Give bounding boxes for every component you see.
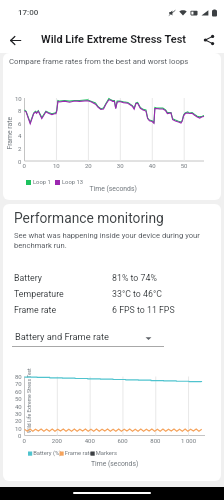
staticText: Wild Life Extreme Stress Test	[41, 33, 187, 46]
staticText: 6 FPS to 11 FPS	[112, 305, 175, 315]
staticText: Performance monitoring	[14, 210, 164, 226]
staticText: 33°C to 46°C	[112, 289, 162, 299]
staticText: Compare frame rates from the best and wo…	[9, 57, 189, 66]
staticText: Frame rate	[14, 305, 57, 315]
button[interactable]: Back	[4, 29, 26, 51]
staticText: Battery and Frame rate	[15, 331, 109, 342]
button[interactable]: Temperature	[3, 289, 221, 305]
button[interactable]: Battery	[3, 273, 221, 289]
staticText: 17:00	[18, 8, 39, 17]
button[interactable]: Battery and Frame rate	[12, 331, 164, 353]
staticText: 81% to 74%	[112, 273, 157, 283]
button[interactable]: Frame rate	[3, 305, 221, 321]
staticText: Battery	[14, 273, 42, 283]
button[interactable]: Share	[198, 29, 220, 51]
staticText: Temperature	[14, 289, 64, 299]
staticText: See what was happening inside your devic…	[14, 231, 208, 250]
